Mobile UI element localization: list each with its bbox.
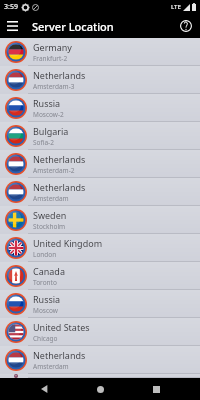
staticText: Moscow-2 bbox=[33, 110, 64, 119]
staticText: Netherlands bbox=[33, 69, 86, 81]
staticText: Germany bbox=[33, 41, 72, 53]
button[interactable]: Canada bbox=[0, 262, 200, 290]
staticText: Moscow bbox=[33, 306, 58, 315]
button[interactable]: Recent apps bbox=[145, 378, 167, 400]
staticText: Russia bbox=[33, 293, 61, 305]
staticText: Russia bbox=[33, 97, 61, 109]
staticText: Netherlands bbox=[33, 349, 86, 361]
button[interactable]: Netherlands bbox=[0, 66, 200, 94]
button[interactable]: Open navigation menu bbox=[0, 14, 24, 38]
button[interactable]: Netherlands bbox=[0, 346, 200, 374]
button[interactable]: United States bbox=[0, 318, 200, 346]
staticText: Bulgaria bbox=[33, 125, 69, 137]
staticText: Toronto bbox=[33, 278, 57, 287]
staticText: 3:59 bbox=[4, 2, 18, 12]
button[interactable]: Home bbox=[89, 378, 111, 400]
button[interactable]: Germany bbox=[0, 38, 200, 66]
staticText: Amsterdam bbox=[33, 194, 69, 203]
staticText: Canada bbox=[33, 265, 65, 277]
staticText: Sweden bbox=[33, 209, 67, 221]
staticText: Amsterdam-2 bbox=[33, 166, 75, 175]
staticText: Chicago bbox=[33, 334, 58, 343]
button[interactable]: Help bbox=[174, 14, 198, 38]
staticText: Sofia-2 bbox=[33, 138, 54, 147]
staticText: LTE bbox=[171, 3, 181, 11]
button[interactable]: Netherlands bbox=[0, 178, 200, 206]
staticText: Latvia bbox=[33, 374, 58, 378]
staticText: Stockholm bbox=[33, 222, 66, 231]
button[interactable]: Russia bbox=[0, 290, 200, 318]
button[interactable]: United Kingdom bbox=[0, 234, 200, 262]
staticText: London bbox=[33, 250, 57, 259]
staticText: United Kingdom bbox=[33, 237, 103, 249]
staticText: Amsterdam bbox=[33, 362, 69, 371]
staticText: Server Location bbox=[32, 19, 114, 34]
staticText: Netherlands bbox=[33, 181, 86, 193]
staticText: Netherlands bbox=[33, 153, 86, 165]
button[interactable]: Back bbox=[34, 378, 56, 400]
button[interactable]: Sweden bbox=[0, 206, 200, 234]
button[interactable]: Latvia bbox=[0, 374, 200, 378]
staticText: United States bbox=[33, 321, 90, 333]
button[interactable]: Bulgaria bbox=[0, 122, 200, 150]
staticText: Frankfurt-2 bbox=[33, 54, 68, 63]
button[interactable]: Netherlands bbox=[0, 150, 200, 178]
button[interactable]: Russia bbox=[0, 94, 200, 122]
staticText: Amsterdam-3 bbox=[33, 82, 75, 91]
